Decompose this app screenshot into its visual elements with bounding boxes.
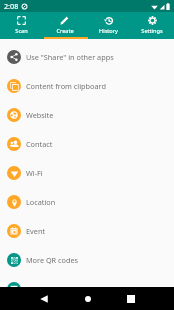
staticText: Wi-Fi	[26, 168, 43, 178]
button[interactable]: More QR codes	[0, 245, 174, 274]
button[interactable]: Use "Share" in other apps	[0, 42, 174, 71]
staticText: History	[99, 27, 118, 35]
staticText: Text	[26, 284, 41, 294]
button[interactable]: Recent apps	[120, 287, 141, 310]
staticText: Settings	[141, 27, 163, 35]
staticText: Contact	[26, 139, 53, 149]
staticText: Event	[26, 226, 46, 236]
button[interactable]: Text	[0, 274, 174, 303]
button[interactable]: Home	[77, 287, 98, 310]
staticText: Create	[56, 27, 74, 35]
button[interactable]: Settings	[130, 12, 174, 39]
button[interactable]: Scan	[0, 12, 43, 39]
button[interactable]: Wi-Fi	[0, 158, 174, 187]
staticText: 2:08	[4, 1, 19, 11]
button[interactable]: Location	[0, 187, 174, 216]
button[interactable]: Event	[0, 216, 174, 245]
staticText: Location	[26, 197, 56, 207]
button[interactable]: History	[86, 12, 130, 39]
staticText: Website	[26, 110, 54, 120]
button[interactable]: Website	[0, 100, 174, 129]
button[interactable]: Content from clipboard	[0, 71, 174, 100]
button[interactable]: Back	[33, 287, 54, 310]
staticText: Content from clipboard	[26, 81, 106, 91]
staticText: Scan	[15, 27, 28, 35]
staticText: Use "Share" in other apps	[26, 52, 114, 62]
button[interactable]: Create	[43, 12, 86, 39]
button[interactable]: Contact	[0, 129, 174, 158]
staticText: More QR codes	[26, 255, 79, 265]
